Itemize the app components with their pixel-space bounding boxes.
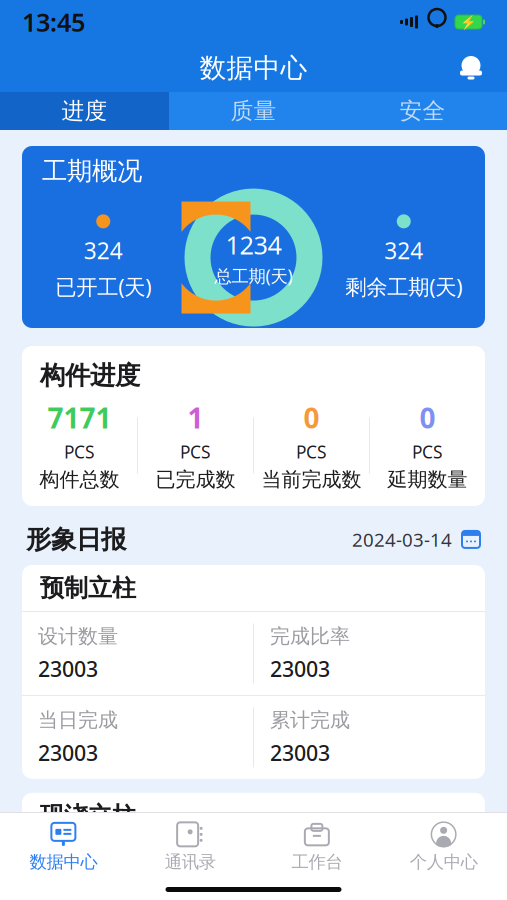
staticText: 剩余工期(天) <box>345 272 462 301</box>
button[interactable]: 2024-03-14 <box>352 527 481 552</box>
staticText: 13:45 <box>22 5 85 39</box>
button[interactable]: 数据中心 <box>0 813 127 873</box>
staticText: 324 <box>384 235 423 265</box>
staticText: 完成比率 <box>270 852 350 876</box>
button[interactable]: 进度 <box>0 92 169 130</box>
staticText: 构件进度 <box>40 360 140 391</box>
staticText: 预制立柱 <box>40 573 136 603</box>
staticText: PCS <box>412 440 443 463</box>
staticText: 完成比率 <box>270 624 350 649</box>
staticText: 进度 <box>61 97 107 125</box>
staticText: ⚡ <box>460 14 477 30</box>
staticText: 总工期(天) <box>214 264 292 287</box>
button[interactable]: 个人中心 <box>380 813 507 873</box>
staticText: 23003 <box>270 655 330 683</box>
staticText: 个人中心 <box>410 851 478 873</box>
button[interactable]: 质量 <box>169 92 338 130</box>
staticText: PCS <box>64 440 95 463</box>
staticText: PCS <box>296 440 327 463</box>
button[interactable]: 通知 <box>449 46 493 90</box>
button[interactable]: 通讯录 <box>127 813 254 873</box>
staticText: 324 <box>84 235 123 265</box>
staticText: 设计数量 <box>38 852 118 876</box>
staticText: 2024-03-14 <box>352 527 452 552</box>
staticText: 工作台 <box>291 851 342 873</box>
staticText: 当前完成数 <box>261 467 361 492</box>
staticText: 工期概况 <box>42 155 142 186</box>
staticText: PCS <box>180 440 211 463</box>
staticText: 质量 <box>230 97 276 125</box>
button[interactable]: 安全 <box>338 92 507 130</box>
staticText: 1234 <box>225 228 281 261</box>
staticText: 现浇立柱 <box>40 801 136 830</box>
staticText: 设计数量 <box>38 624 118 649</box>
staticText: 23003 <box>270 738 330 767</box>
staticText: 23003 <box>270 882 330 900</box>
staticText: 数据中心 <box>199 52 307 84</box>
staticText: 累计完成 <box>270 708 350 732</box>
staticText: 1 <box>187 399 203 436</box>
staticText: 形象日报 <box>26 524 126 555</box>
staticText: 0 <box>303 399 319 436</box>
staticText: 7171 <box>47 399 111 436</box>
staticText: 23003 <box>38 655 98 683</box>
staticText: 数据中心 <box>29 851 97 873</box>
staticText: 通讯录 <box>165 851 216 873</box>
staticText: 已完成数 <box>155 467 235 492</box>
staticText: 延期数量 <box>387 467 467 492</box>
staticText: 已开工(天) <box>55 272 151 301</box>
staticText: 当日完成 <box>38 708 118 732</box>
staticText: 23003 <box>38 738 98 767</box>
staticText: 0 <box>419 399 435 436</box>
staticText: 构件总数 <box>39 467 119 492</box>
staticText: 安全 <box>399 97 445 125</box>
button[interactable]: 工作台 <box>253 813 380 873</box>
